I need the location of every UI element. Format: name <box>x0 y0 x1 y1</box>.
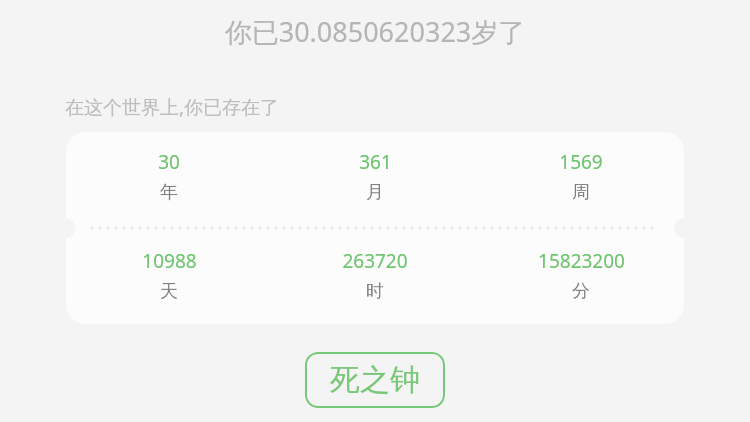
staticText: 15823200 <box>538 248 625 274</box>
staticText: 在这个世界上,你已存在了 <box>65 94 280 120</box>
staticText: 你已30.0850620323岁了 <box>0 13 750 50</box>
staticText: 1569 <box>559 149 603 175</box>
staticText: 周 <box>572 181 590 204</box>
staticText: 10988 <box>142 248 197 274</box>
staticText: 死之钟 <box>330 361 420 399</box>
staticText: 月 <box>366 181 384 204</box>
staticText: 时 <box>366 280 384 303</box>
staticText: 年 <box>160 181 178 204</box>
button[interactable]: 死之钟 <box>305 352 445 408</box>
staticText: 361 <box>359 149 392 175</box>
staticText: 天 <box>160 280 178 303</box>
staticText: 分 <box>572 280 590 303</box>
staticText: 30 <box>158 149 180 175</box>
staticText: 263720 <box>342 248 408 274</box>
